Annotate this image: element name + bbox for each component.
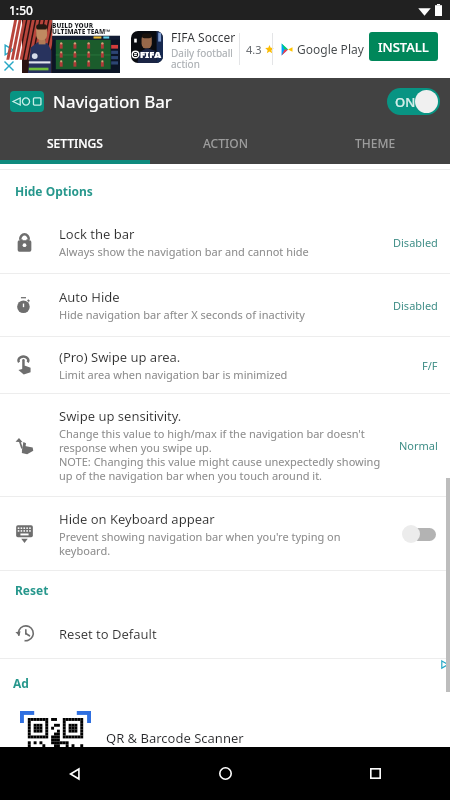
staticText: SETTINGS [47,135,103,151]
staticText: Hide navigation bar after X seconds of i… [59,307,305,322]
staticText: F/F [422,358,438,373]
staticText: Disabled [393,235,438,250]
staticText: Daily football action [171,46,237,71]
button[interactable]: INSTALL [369,32,438,61]
staticText: Hide on Keyboard appear [59,510,215,528]
staticText: Reset to Default [59,625,157,643]
staticText: FIFA [140,48,162,61]
staticText: Change this value to high/max if the nav… [59,426,384,483]
button[interactable]: SETTINGS [0,125,150,160]
staticText: ON [395,93,416,111]
button[interactable]: Hide on Keyboard appear [0,497,450,570]
staticText: ACTION [203,135,248,151]
button[interactable]: THEME [300,125,450,160]
staticText: Normal [399,438,438,453]
button[interactable]: (Pro) Swipe up area. [0,337,450,393]
staticText: 4.3 [246,42,262,57]
staticText: Prevent showing navigation bar when you'… [59,529,386,558]
button[interactable]: Home [150,747,300,800]
staticText: (Pro) Swipe up area. [59,348,181,366]
staticText: Limit area when navigation bar is minimi… [59,367,288,382]
staticText: QR & Barcode Scanner [106,729,244,747]
staticText: Lock the bar [59,225,135,243]
staticText: Auto Hide [59,288,120,306]
staticText: FIFA Soccer [171,29,236,45]
staticText: Ad [13,675,29,691]
button[interactable]: Swipe up sensitivity. [0,394,450,496]
staticText: BUILD YOUR ULTIMATE TEAM™ [52,21,111,36]
button[interactable]: Auto Hide [0,274,450,336]
button[interactable]: BUILD YOUR ULTIMATE TEAM™ [0,20,450,78]
button[interactable]: Navigation bar enabled [387,88,440,115]
button[interactable]: Lock the bar [0,211,450,273]
staticText: Navigation Bar [53,90,172,113]
button[interactable]: Ad [0,659,450,747]
staticText: Hide Options [15,183,93,199]
button[interactable]: ACTION [150,125,300,160]
button[interactable]: Back [0,747,150,800]
button[interactable]: Recent apps [300,747,450,800]
staticText: Swipe up sensitivity. [59,407,182,425]
staticText: Reset [15,582,49,598]
staticText: INSTALL [378,38,429,56]
staticText: Always show the navigation bar and canno… [59,244,309,259]
button[interactable]: Reset to Default [0,609,450,658]
staticText: Google Play [297,41,364,57]
staticText: THEME [355,135,396,151]
staticText: Disabled [393,298,438,313]
staticText: 1:50 [9,2,33,18]
